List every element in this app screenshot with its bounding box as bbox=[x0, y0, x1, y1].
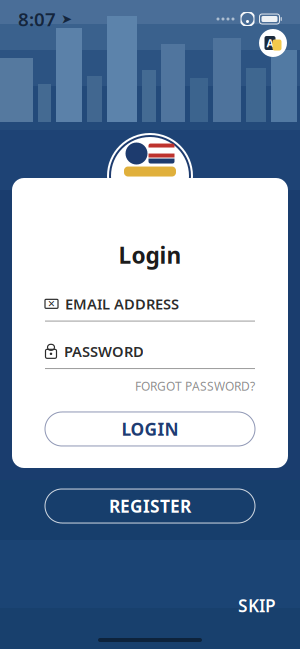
staticText: FORGOT PASSWORD? bbox=[135, 378, 255, 394]
button[interactable]: FORGOT PASSWORD? bbox=[135, 374, 255, 398]
staticText: ✕ bbox=[47, 298, 55, 309]
button[interactable]: LOGIN bbox=[45, 412, 255, 446]
button[interactable]: REGISTER bbox=[45, 489, 255, 523]
staticText: 95 bbox=[133, 176, 167, 215]
staticText: REGISTER bbox=[109, 494, 191, 517]
staticText: ➤ bbox=[56, 11, 72, 26]
staticText: A bbox=[266, 36, 273, 50]
staticText: SKIP bbox=[238, 594, 276, 617]
staticText: Login bbox=[118, 240, 181, 270]
staticText: LOGIN bbox=[121, 417, 178, 440]
staticText: EMAIL ADDRESS bbox=[65, 294, 179, 314]
staticText: 8:07 bbox=[18, 7, 56, 31]
button[interactable]: SKIP bbox=[230, 588, 284, 623]
staticText: PASSWORD bbox=[64, 342, 144, 361]
button[interactable]: Translate bbox=[259, 29, 287, 57]
